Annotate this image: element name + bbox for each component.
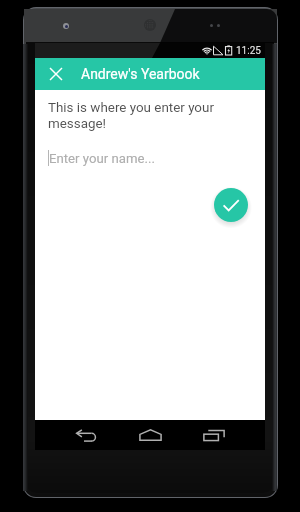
staticText: 11:25 (236, 45, 261, 57)
staticText: This is where you enter your message! (48, 100, 256, 132)
staticText: Enter your name... (49, 151, 155, 166)
button[interactable]: Home (124, 420, 176, 450)
button[interactable]: Back (60, 420, 112, 450)
button[interactable]: Recents (188, 420, 240, 450)
button[interactable]: Confirm (214, 188, 248, 222)
button[interactable]: Close (35, 58, 76, 90)
staticText: Andrew's Yearbook (81, 66, 200, 82)
